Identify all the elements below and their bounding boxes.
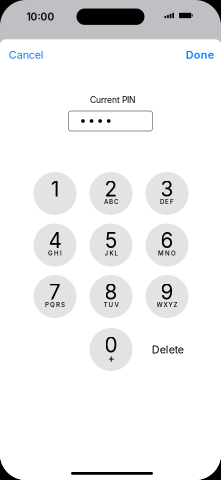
button[interactable]: 1 [29, 169, 81, 218]
staticText: Cancel [9, 48, 44, 61]
staticText: + [107, 351, 114, 365]
button[interactable]: Done [174, 44, 214, 66]
staticText: 1 [51, 176, 59, 201]
staticText: T U V [103, 301, 118, 308]
staticText: D E F [160, 198, 174, 205]
staticText: 3 [160, 176, 173, 201]
staticText: P Q R S [45, 301, 65, 308]
button[interactable]: 0 [85, 325, 137, 374]
button[interactable]: 7 [29, 272, 81, 321]
staticText: Delete [152, 343, 184, 356]
staticText: A B C [104, 198, 118, 205]
staticText: 10:00 [26, 11, 54, 23]
button[interactable]: Delete [142, 325, 194, 374]
staticText: Current PIN [90, 95, 135, 105]
staticText: W X Y Z [156, 301, 177, 308]
button[interactable]: 5 [85, 220, 137, 269]
button[interactable]: 3 [141, 169, 193, 218]
staticText: J K L [104, 249, 117, 257]
staticText: 6 [160, 228, 173, 253]
button[interactable]: 4 [29, 220, 81, 269]
staticText: Done [186, 48, 214, 61]
staticText: 7 [49, 279, 61, 304]
staticText: 8 [104, 279, 117, 304]
staticText: 5 [105, 228, 117, 253]
staticText: M N O [158, 249, 176, 257]
button[interactable]: 8 [85, 272, 137, 321]
staticText: 0 [104, 332, 117, 357]
button[interactable]: 2 [85, 169, 137, 218]
button[interactable]: Cancel [9, 44, 53, 66]
staticText: G H I [48, 249, 62, 257]
staticText: 2 [104, 176, 117, 201]
staticText: 9 [160, 279, 173, 304]
button[interactable]: 6 [141, 220, 193, 269]
button[interactable]: 9 [141, 272, 193, 321]
staticText: 4 [48, 228, 61, 253]
